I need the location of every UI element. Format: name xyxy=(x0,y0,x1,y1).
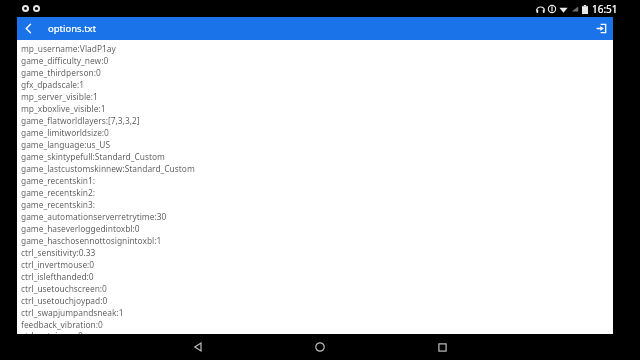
button[interactable]: mp_username:VladP1ay xyxy=(17,40,613,334)
staticText: game_skintypefull:Standard_Custom xyxy=(21,151,165,162)
button[interactable]: Home xyxy=(300,334,340,360)
button[interactable]: Recent apps xyxy=(422,334,462,360)
staticText: game_recentskin1: xyxy=(21,175,96,186)
staticText: game_language:us_US xyxy=(21,139,111,150)
button[interactable]: Save and exit xyxy=(590,17,613,40)
staticText: ctrl_islefthanded:0 xyxy=(21,271,94,282)
staticText: mp_server_visible:1 xyxy=(21,91,98,102)
button[interactable]: Back xyxy=(17,17,40,40)
staticText: gfx_dpadscale:1 xyxy=(21,79,85,90)
staticText: ctrl_invertmouse:0 xyxy=(21,259,95,270)
staticText: game_limitworldsize:0 xyxy=(21,127,109,138)
staticText: 16:51 xyxy=(592,2,618,16)
staticText: ctrl_sensitivity:0.33 xyxy=(21,247,96,258)
staticText: game_haseverloggedintoxbl:0 xyxy=(21,223,140,234)
staticText: game_lastcustomskinnew:Standard_Custom xyxy=(21,163,195,174)
staticText: feedback_vibration:0 xyxy=(21,319,103,330)
staticText: ctrl_swapjumpandsneak:1 xyxy=(21,307,124,318)
staticText: game_recentskin2: xyxy=(21,187,96,198)
button[interactable]: Back xyxy=(178,334,218,360)
staticText: mp_username:VladP1ay xyxy=(21,43,116,54)
staticText: game_automationserverretrytime:30 xyxy=(21,211,167,222)
staticText: ctrl_usetouchjoypad:0 xyxy=(21,295,108,306)
staticText: game_thirdperson:0 xyxy=(21,67,101,78)
staticText: ctrl_usetouchscreen:0 xyxy=(21,283,107,294)
staticText: mp_xboxlive_visible:1 xyxy=(21,103,106,114)
staticText: options.txt xyxy=(48,22,97,35)
staticText: game_difficulty_new:0 xyxy=(21,55,109,66)
staticText: ctrl_autojump:0 xyxy=(21,330,83,334)
staticText: game_recentskin3: xyxy=(21,199,96,210)
staticText: game_haschosennottosignintoxbl:1 xyxy=(21,235,162,246)
staticText: game_flatworldlayers:[7,3,3,2] xyxy=(21,115,140,126)
